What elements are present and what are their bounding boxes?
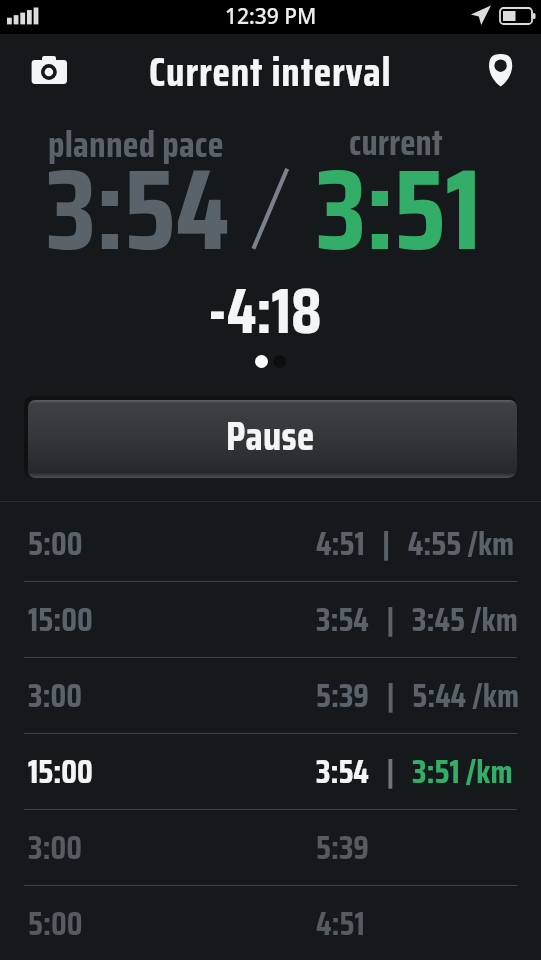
staticText: -4:18	[208, 261, 322, 360]
staticText: 3:54 | 3:45 /km	[316, 594, 518, 646]
staticText: 15:00	[28, 746, 93, 798]
staticText: 3:00	[28, 670, 82, 722]
staticText: 3:51	[316, 119, 482, 299]
staticText: 12:39 PM	[225, 2, 317, 31]
staticText: 5:39	[316, 822, 369, 874]
staticText: 5:39 | 5:44 /km	[316, 670, 520, 722]
staticText: Pause	[226, 404, 315, 468]
button[interactable]: 5:00	[0, 506, 541, 581]
staticText: current	[349, 114, 443, 171]
staticText: 3:54 | 3:51 /km	[316, 746, 513, 798]
button[interactable]: 3:00	[0, 658, 541, 733]
staticText: 3:54	[46, 119, 230, 299]
staticText: 15:00	[28, 594, 93, 646]
staticText: 5:00	[28, 518, 83, 570]
staticText: planned pace	[48, 115, 224, 173]
button[interactable]: Pause	[24, 396, 517, 478]
staticText: 5:00	[28, 898, 83, 950]
button[interactable]: 5:00	[0, 886, 541, 960]
staticText: 4:51	[316, 898, 365, 950]
staticText: Current interval	[149, 39, 392, 104]
staticText: 3:00	[28, 822, 82, 874]
button[interactable]: 3:00	[0, 810, 541, 885]
button[interactable]: Camera	[22, 43, 76, 97]
button[interactable]: Location	[476, 45, 526, 95]
button[interactable]: 15:00	[0, 734, 541, 809]
staticText: 4:51 | 4:55 /km	[316, 518, 515, 570]
button[interactable]: 15:00	[0, 582, 541, 657]
